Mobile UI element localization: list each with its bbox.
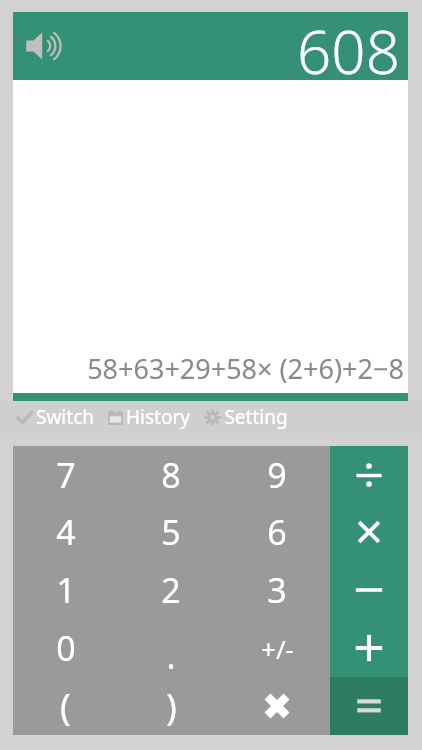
button[interactable]: 9 — [224, 446, 330, 503]
button[interactable]: Plus — [330, 619, 408, 677]
staticText: 3 — [267, 567, 287, 613]
button[interactable]: 3 — [224, 561, 330, 619]
button[interactable]: Switch — [14, 404, 96, 430]
staticText: 2 — [161, 567, 181, 613]
button[interactable]: History — [106, 404, 192, 430]
button[interactable]: Minus — [330, 561, 408, 619]
button[interactable]: +/- — [224, 619, 330, 677]
staticText: 6 — [267, 509, 287, 555]
staticText: 608 — [297, 10, 400, 78]
button[interactable]: Equals — [330, 677, 408, 735]
button[interactable]: 8 — [118, 446, 224, 503]
button[interactable]: Speak result — [17, 20, 69, 72]
staticText: 58+63+29+58× (2+6)+2−8 — [87, 350, 404, 387]
staticText: 1 — [56, 567, 76, 613]
button[interactable]: . — [118, 619, 224, 677]
staticText: +/- — [261, 631, 294, 666]
button[interactable]: 1 — [13, 561, 118, 619]
staticText: 7 — [56, 452, 76, 498]
button[interactable]: ( — [13, 677, 118, 735]
staticText: 4 — [56, 509, 76, 555]
button[interactable]: Divide — [330, 446, 408, 503]
button[interactable]: Setting — [202, 404, 290, 430]
staticText: 0 — [56, 625, 76, 671]
staticText: ( — [60, 682, 71, 731]
staticText: Switch — [36, 404, 94, 430]
button[interactable]: Multiply — [330, 503, 408, 561]
button[interactable]: 2 — [118, 561, 224, 619]
button[interactable]: 0 — [13, 619, 118, 677]
staticText: 5 — [161, 509, 181, 555]
button[interactable]: 4 — [13, 503, 118, 561]
button[interactable]: Delete — [224, 677, 330, 735]
button[interactable]: 5 — [118, 503, 224, 561]
staticText: ) — [166, 682, 177, 731]
button[interactable]: ) — [118, 677, 224, 735]
staticText: . — [166, 633, 176, 679]
staticText: 9 — [267, 452, 287, 498]
staticText: 8 — [161, 452, 181, 498]
button[interactable]: 6 — [224, 503, 330, 561]
staticText: History — [126, 404, 190, 430]
button[interactable]: 7 — [13, 446, 118, 503]
staticText: Setting — [224, 404, 288, 430]
